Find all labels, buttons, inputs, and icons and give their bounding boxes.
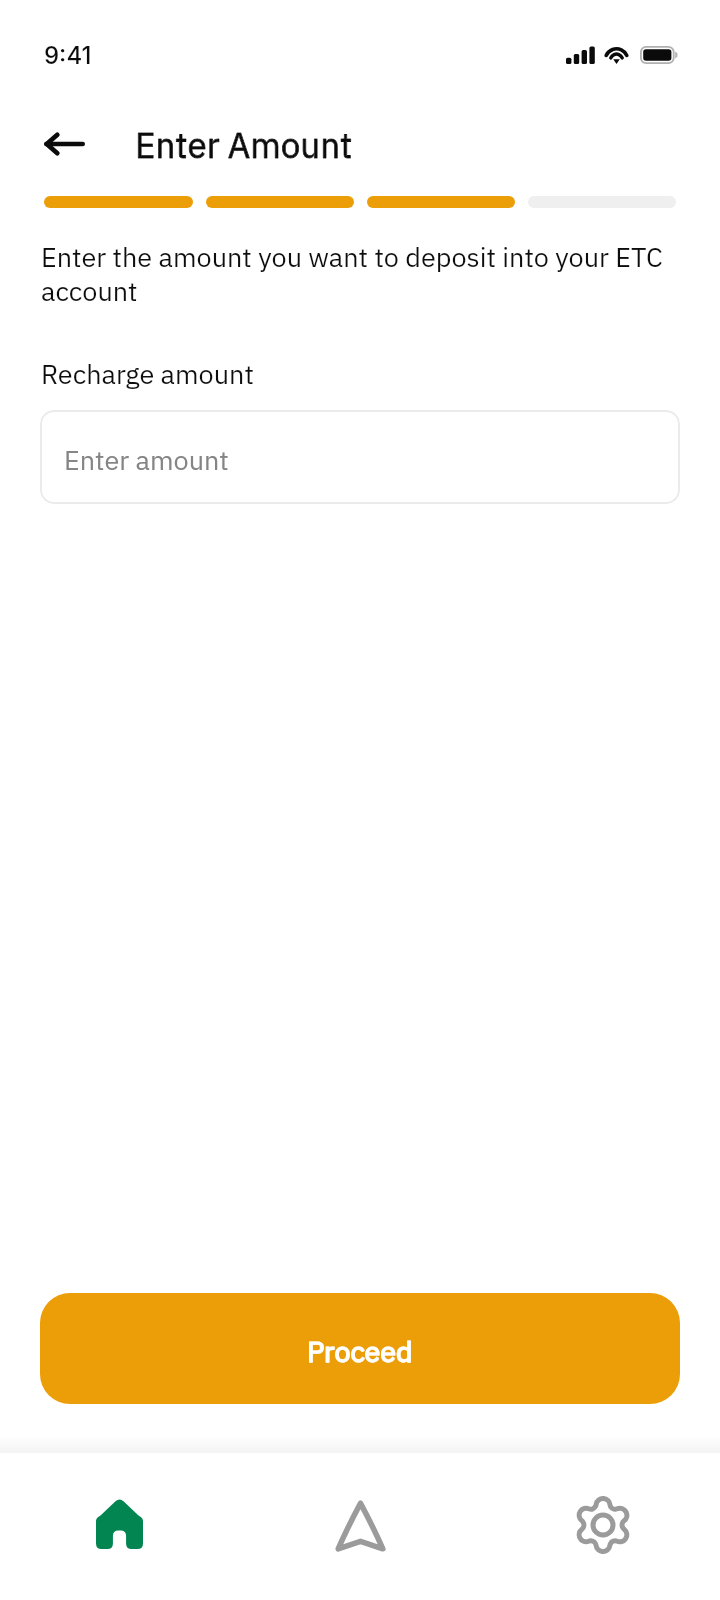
button[interactable]: Settings [480, 1453, 720, 1600]
staticText: Proceed [307, 1333, 413, 1370]
button[interactable]: Navigate [240, 1453, 480, 1600]
staticText: 9:41 [44, 41, 92, 70]
staticText: Enter the amount you want to deposit int… [41, 239, 673, 308]
staticText: Enter Amount [135, 122, 353, 168]
staticText: Enter Amount [135, 122, 353, 168]
staticText: Recharge amount [41, 356, 254, 391]
button[interactable]: Home [0, 1453, 240, 1600]
staticText: Enter amount [64, 442, 229, 477]
button[interactable]: Proceed [40, 1293, 680, 1404]
button[interactable]: Enter amount [40, 410, 680, 504]
button[interactable]: Back [36, 116, 92, 172]
staticText: Proceed [307, 1333, 413, 1370]
